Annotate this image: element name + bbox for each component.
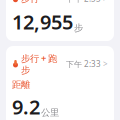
button[interactable]: 步行 [6, 0, 114, 41]
staticText: 9.2 [12, 93, 40, 120]
staticText: > [103, 59, 108, 69]
staticText: 下午 2:33 [66, 0, 101, 4]
staticText: > [103, 0, 108, 4]
staticText: 公里 [41, 107, 59, 118]
staticText: 步 [74, 22, 83, 34]
button[interactable]: 步行 + 跑步 [6, 46, 114, 120]
staticText: 下午 2:33 [66, 59, 101, 69]
staticText: 步行 [21, 0, 39, 4]
staticText: 步行 + 跑步 [21, 52, 57, 76]
staticText: 12,955 [12, 8, 73, 35]
staticText: 距離 [12, 79, 30, 90]
